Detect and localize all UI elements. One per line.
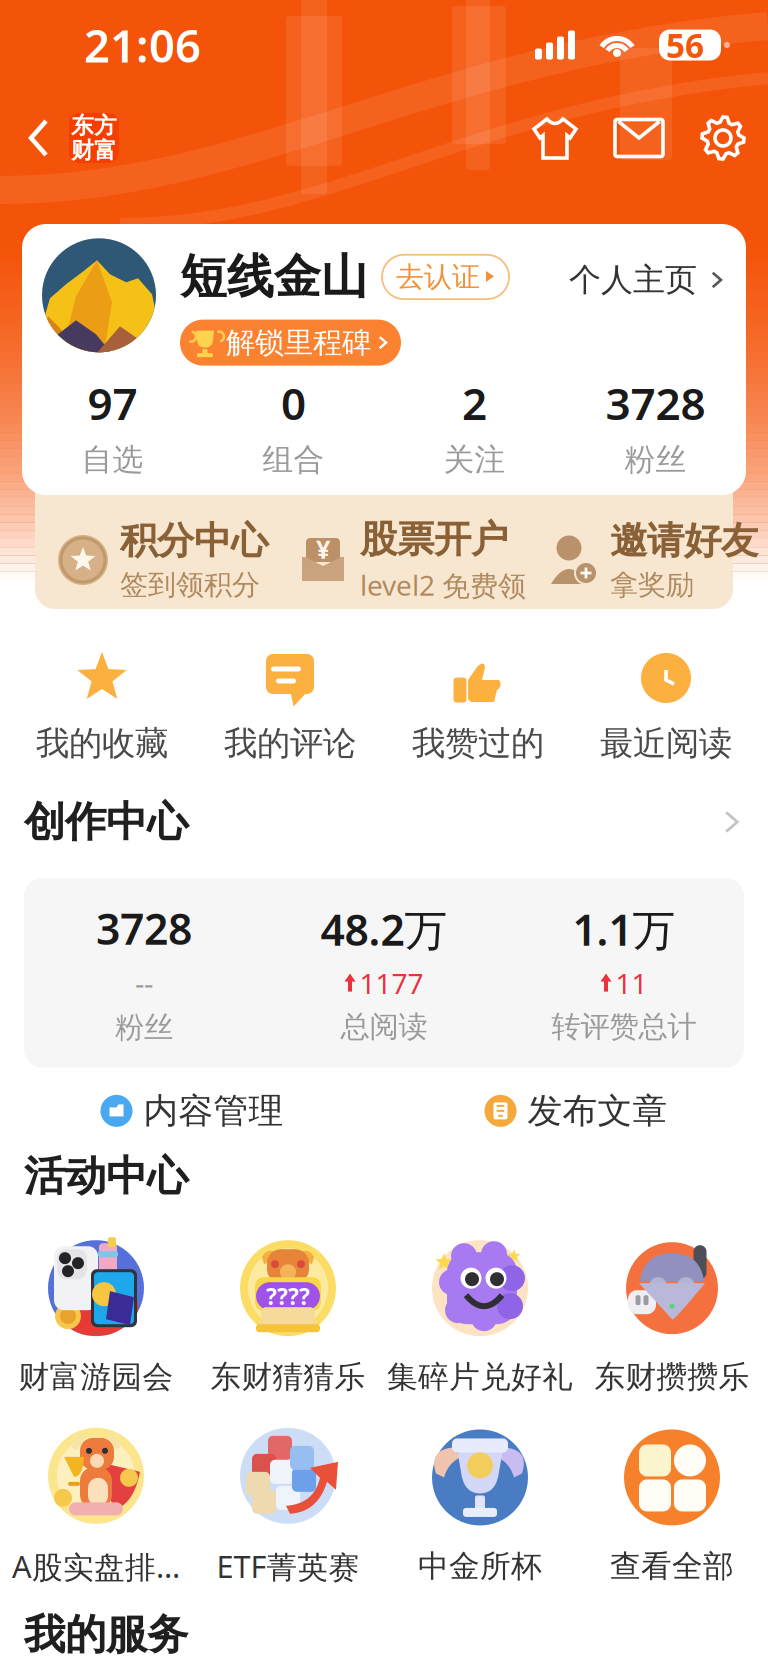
- button[interactable]: 东财攒攒乐: [576, 1234, 768, 1396]
- staticText: 邀请好友: [610, 518, 758, 564]
- staticText: 1177: [359, 964, 423, 1002]
- staticText: 东方: [71, 112, 117, 139]
- staticText: 财富游园会: [18, 1358, 173, 1396]
- button[interactable]: 2: [384, 374, 565, 479]
- staticText: 活动中心: [24, 1151, 188, 1202]
- button[interactable]: 查看全部: [576, 1423, 768, 1585]
- staticText: A股实盘排…: [12, 1546, 180, 1587]
- staticText: 积分中心: [120, 518, 268, 564]
- staticText: 97: [87, 374, 137, 432]
- staticText: 组合: [262, 441, 324, 479]
- staticText: 解锁里程碑: [226, 325, 371, 361]
- button[interactable]: 邀请好友: [547, 525, 758, 595]
- button[interactable]: Settings: [682, 103, 746, 173]
- staticText: 最近阅读: [600, 723, 732, 764]
- staticText: 11: [615, 964, 647, 1002]
- staticText: 48.2万: [320, 901, 447, 957]
- staticText: 内容管理: [143, 1090, 283, 1132]
- button[interactable]: 个人主页: [569, 230, 726, 300]
- staticText: 56: [666, 23, 704, 67]
- staticText: 自选: [81, 441, 143, 479]
- staticText: 发布文章: [527, 1090, 667, 1132]
- staticText: 粉丝: [115, 1010, 173, 1046]
- button[interactable]: 我赞过的: [384, 651, 572, 764]
- staticText: level2 免费领: [360, 566, 526, 604]
- staticText: 创作中心: [24, 797, 188, 847]
- staticText: 我赞过的: [412, 723, 544, 764]
- staticText: 股票开户: [360, 516, 508, 562]
- button[interactable]: 去认证: [382, 255, 509, 299]
- staticText: 3728: [96, 900, 192, 957]
- button[interactable]: 最近阅读: [572, 651, 760, 764]
- staticText: --: [135, 964, 153, 1003]
- button[interactable]: 我的收藏: [8, 651, 196, 764]
- button[interactable]: A股实盘排…: [0, 1422, 192, 1587]
- staticText: 我的收藏: [36, 723, 168, 764]
- button[interactable]: 97: [22, 374, 203, 479]
- staticText: 签到领积分: [120, 568, 260, 602]
- staticText: 21:06: [84, 15, 201, 75]
- staticText: 集碎片兑好礼: [387, 1358, 573, 1396]
- button[interactable]: ????: [192, 1234, 384, 1396]
- staticText: 东财猜猜乐: [210, 1358, 365, 1396]
- button[interactable]: 财富游园会: [0, 1234, 192, 1396]
- button[interactable]: 0: [203, 374, 384, 479]
- staticText: 总阅读: [340, 1009, 427, 1045]
- staticText: 短线金山: [180, 248, 368, 306]
- button[interactable]: 集碎片兑好礼: [384, 1234, 576, 1396]
- staticText: 0: [281, 374, 306, 432]
- button[interactable]: 积分中心: [57, 525, 268, 595]
- staticText: ETF菁英赛: [216, 1546, 359, 1587]
- button[interactable]: Messages: [596, 106, 682, 170]
- staticText: 中金所杯: [418, 1547, 542, 1585]
- staticText: 我的服务: [24, 1609, 188, 1660]
- button[interactable]: 创作中心: [700, 810, 744, 834]
- button[interactable]: Shop: [514, 102, 596, 174]
- staticText: 查看全部: [610, 1547, 734, 1585]
- button[interactable]: 内容管理: [0, 1090, 384, 1132]
- button[interactable]: Back: [18, 102, 60, 174]
- staticText: 粉丝: [624, 441, 686, 479]
- staticText: ????: [266, 1281, 310, 1311]
- staticText: 拿奖励: [610, 568, 694, 602]
- button[interactable]: 东方财富: [60, 102, 128, 174]
- button[interactable]: ETF菁英赛: [192, 1422, 384, 1587]
- staticText: 财富: [71, 136, 117, 164]
- staticText: 2: [462, 374, 487, 432]
- staticText: 3728: [605, 374, 705, 432]
- button[interactable]: 发布文章: [384, 1090, 768, 1132]
- button[interactable]: 3728: [565, 374, 746, 479]
- button[interactable]: 中金所杯: [384, 1423, 576, 1585]
- staticText: 转评赞总计: [551, 1009, 696, 1045]
- staticText: 我的评论: [224, 723, 356, 764]
- staticText: 1.1万: [572, 901, 675, 957]
- staticText: ¥: [316, 532, 330, 566]
- button[interactable]: ¥: [297, 525, 526, 595]
- button[interactable]: 我的评论: [196, 651, 384, 764]
- staticText: 去认证: [396, 260, 480, 294]
- button[interactable]: 解锁里程碑: [180, 320, 401, 366]
- staticText: 关注: [443, 441, 505, 479]
- staticText: 个人主页: [569, 260, 697, 300]
- staticText: 东财攒攒乐: [594, 1358, 749, 1396]
